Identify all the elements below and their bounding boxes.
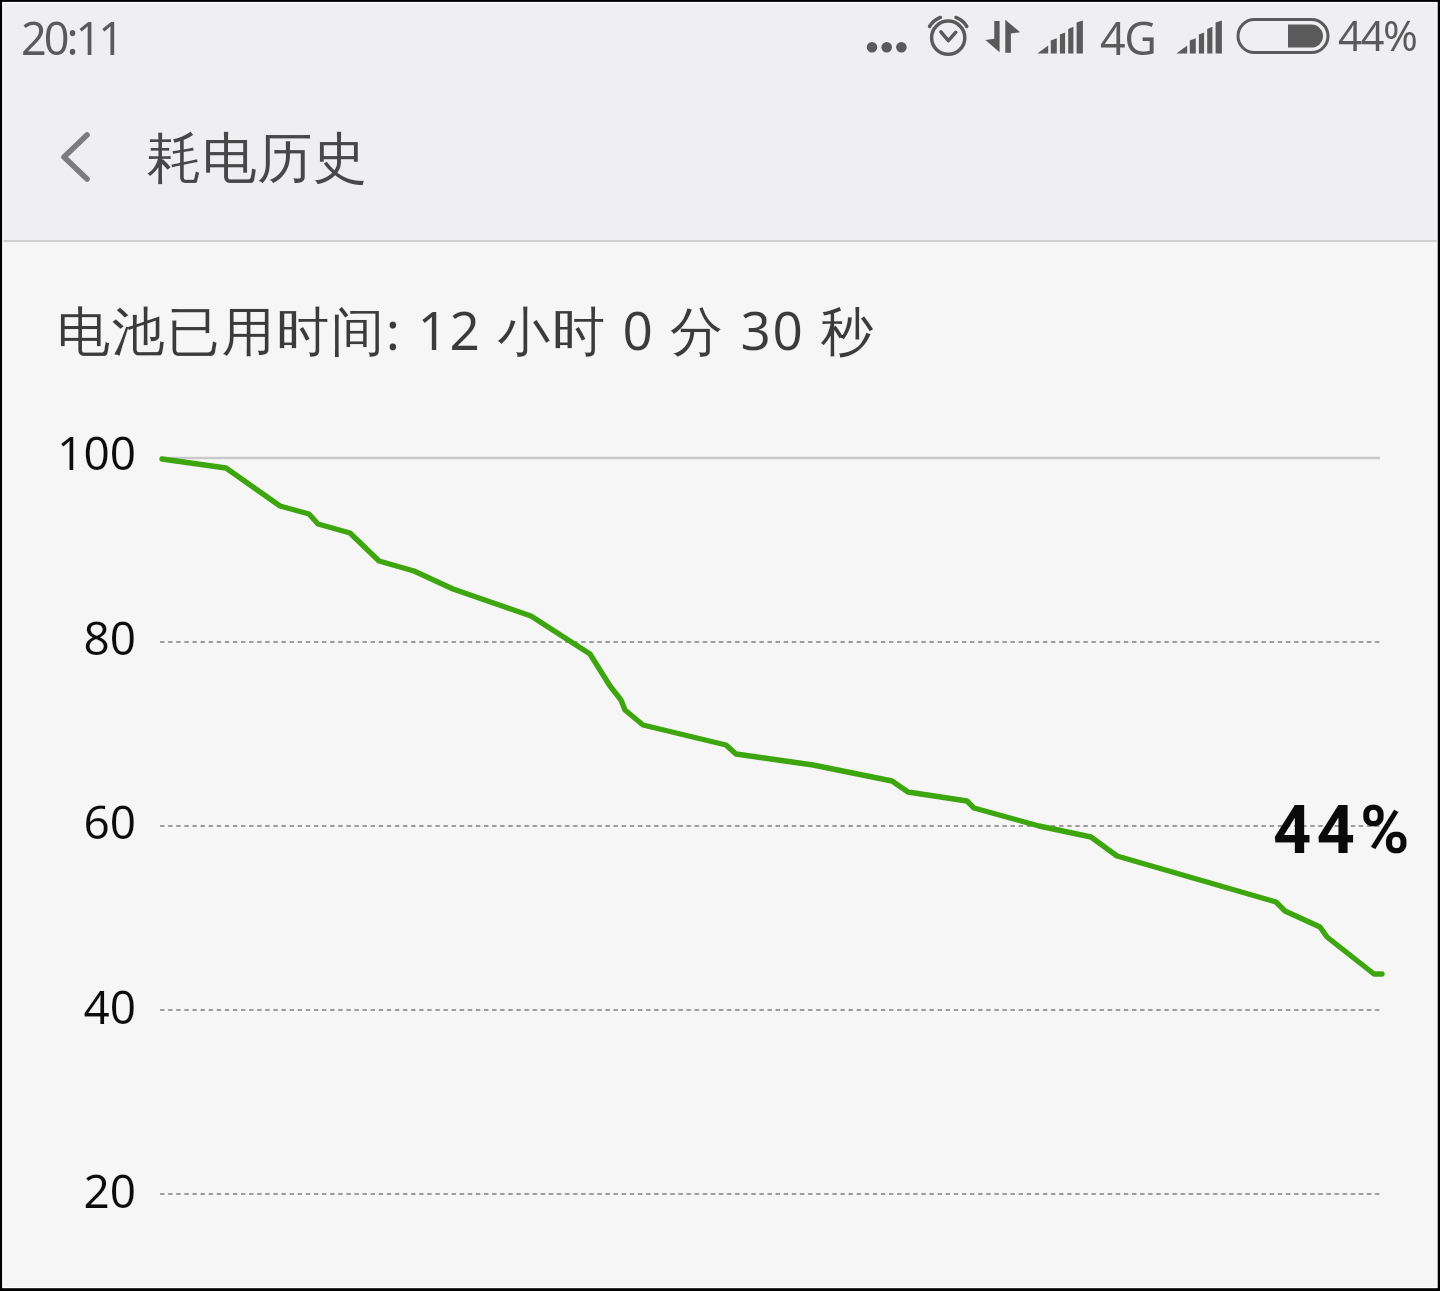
staticText: 80	[0, 606, 136, 669]
staticText: 60	[0, 790, 136, 853]
staticText: 20:11	[21, 7, 122, 68]
staticText: 电池已用时间: 12 小时 0 分 30 秒	[57, 293, 876, 365]
staticText: 耗电历史	[147, 124, 367, 193]
staticText: 100	[0, 421, 136, 484]
button[interactable]: Back	[21, 104, 125, 190]
staticText: 44%	[1273, 791, 1415, 870]
staticText: 40	[0, 975, 136, 1038]
staticText: 20	[0, 1159, 136, 1222]
staticText: 44%	[1338, 6, 1417, 63]
staticText: 4G	[1100, 7, 1156, 68]
